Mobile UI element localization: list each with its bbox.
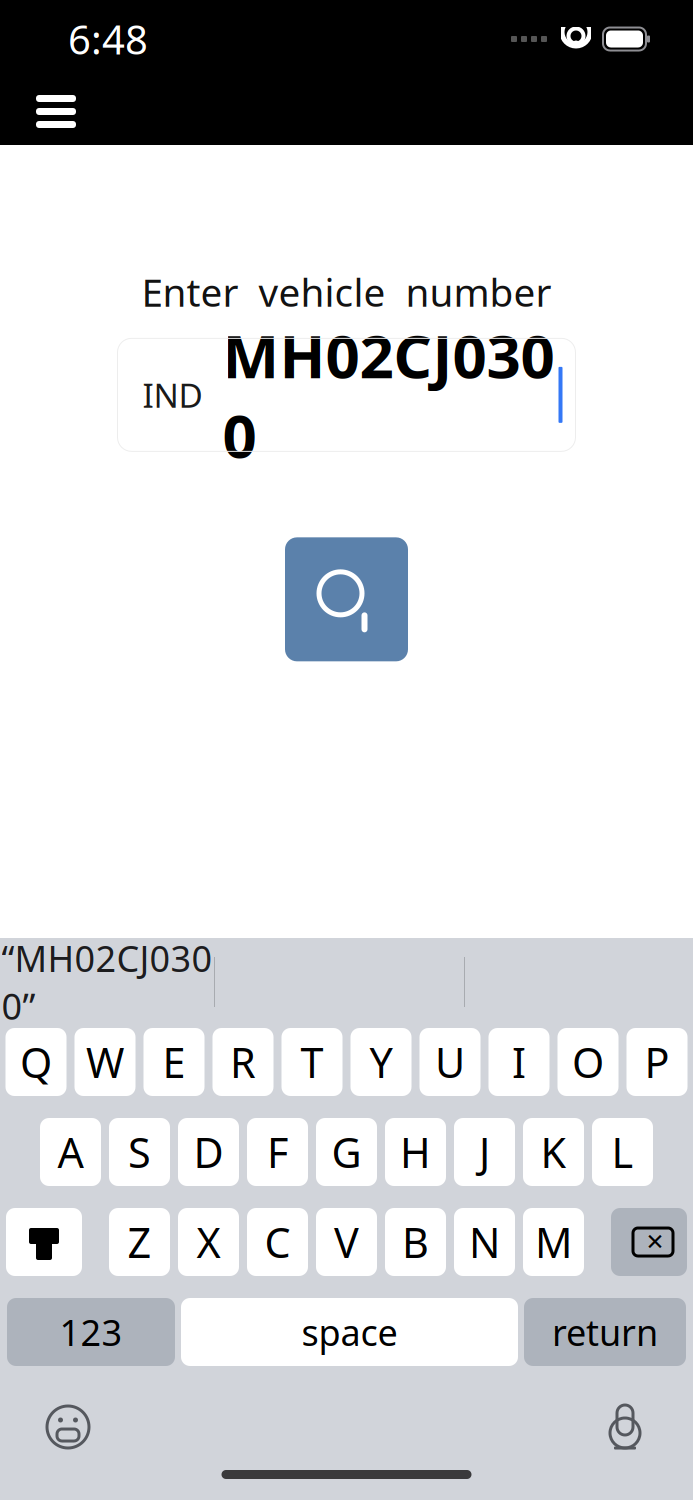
staticText: Enter vehicle number xyxy=(141,266,551,317)
button[interactable]: Dictation xyxy=(589,1391,661,1463)
staticText: M xyxy=(535,1215,572,1269)
button[interactable]: M xyxy=(523,1208,584,1276)
staticText: L xyxy=(611,1125,633,1179)
staticText: U xyxy=(435,1035,465,1089)
button[interactable]: Y xyxy=(350,1028,411,1096)
staticText: E xyxy=(162,1035,185,1089)
button[interactable]: W xyxy=(74,1028,135,1096)
staticText: D xyxy=(193,1125,223,1179)
button[interactable]: 123 xyxy=(7,1298,175,1366)
staticText: R xyxy=(230,1035,256,1089)
staticText: C xyxy=(264,1215,290,1269)
button[interactable]: C xyxy=(247,1208,308,1276)
button[interactable]: Emoji keyboard xyxy=(32,1391,104,1463)
staticText: S xyxy=(128,1125,151,1179)
staticText: G xyxy=(331,1125,361,1179)
button[interactable]: I xyxy=(488,1028,549,1096)
button[interactable]: P xyxy=(626,1028,687,1096)
staticText: N xyxy=(469,1215,500,1269)
staticText: Z xyxy=(127,1215,151,1269)
button[interactable]: D xyxy=(178,1118,239,1186)
button[interactable]: return xyxy=(524,1298,686,1366)
staticText: K xyxy=(540,1125,566,1179)
button[interactable]: H xyxy=(385,1118,446,1186)
staticText: Y xyxy=(369,1035,392,1089)
staticText: 123 xyxy=(59,1308,122,1356)
button[interactable]: R xyxy=(212,1028,273,1096)
button[interactable]: Delete xyxy=(611,1208,687,1276)
button[interactable]: space xyxy=(181,1298,518,1366)
button[interactable]: O xyxy=(557,1028,618,1096)
staticText: 6:48 xyxy=(68,12,148,65)
button[interactable]: V xyxy=(316,1208,377,1276)
button[interactable]: T xyxy=(281,1028,342,1096)
staticText: J xyxy=(479,1125,490,1179)
staticText: W xyxy=(86,1035,124,1089)
staticText: T xyxy=(300,1035,323,1089)
button[interactable]: “MH02CJ0300” xyxy=(0,938,214,1026)
button[interactable]: U xyxy=(419,1028,480,1096)
button[interactable]: L xyxy=(592,1118,653,1186)
button[interactable]: X xyxy=(178,1208,239,1276)
staticText: ✕ xyxy=(645,1229,664,1255)
button[interactable]: G xyxy=(316,1118,377,1186)
button[interactable]: K xyxy=(523,1118,584,1186)
staticText: X xyxy=(196,1215,220,1269)
staticText: B xyxy=(402,1215,429,1269)
staticText: O xyxy=(572,1035,604,1089)
staticText: P xyxy=(644,1035,669,1089)
staticText: F xyxy=(267,1125,288,1179)
button[interactable]: S xyxy=(109,1118,170,1186)
button[interactable]: N xyxy=(454,1208,515,1276)
staticText: “MH02CJ0300” xyxy=(1,934,212,1030)
button[interactable]: Shift xyxy=(6,1208,82,1276)
button[interactable]: B xyxy=(385,1208,446,1276)
staticText: H xyxy=(400,1125,431,1179)
button[interactable]: Menu xyxy=(18,78,94,145)
staticText: space xyxy=(301,1308,397,1356)
button[interactable]: E xyxy=(143,1028,204,1096)
button[interactable]: F xyxy=(247,1118,308,1186)
staticText: MH02CJ0300 xyxy=(222,315,554,475)
staticText: V xyxy=(334,1215,359,1269)
staticText: A xyxy=(57,1125,83,1179)
button[interactable]: A xyxy=(40,1118,101,1186)
staticText: IND xyxy=(142,373,202,417)
staticText: return xyxy=(552,1308,658,1356)
staticText: I xyxy=(512,1035,526,1089)
button[interactable]: Q xyxy=(5,1028,66,1096)
button[interactable]: Search xyxy=(285,537,408,661)
button[interactable]: Z xyxy=(109,1208,170,1276)
button[interactable]: J xyxy=(454,1118,515,1186)
staticText: Q xyxy=(20,1035,52,1089)
